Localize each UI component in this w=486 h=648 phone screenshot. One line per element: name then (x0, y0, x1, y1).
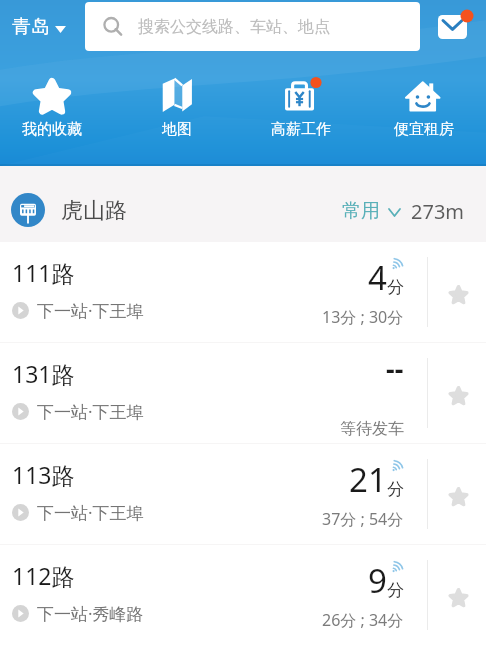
staticText: 下一站·下王埠 (37, 400, 144, 423)
staticText: 下一站·下王埠 (37, 501, 144, 524)
staticText: 分 (387, 479, 404, 500)
staticText: 等待发车 (340, 419, 404, 439)
staticText: 分 (387, 580, 404, 601)
staticText: 26分 ; 34分 (322, 609, 404, 631)
staticText: 下一站·秀峰路 (37, 602, 144, 625)
button[interactable]: 112路 (0, 545, 486, 645)
button[interactable]: 搜索公交线路、车站、地点 (85, 2, 420, 51)
staticText: 273m (411, 198, 465, 225)
button[interactable]: Favorite (428, 545, 486, 645)
button[interactable]: 131路 (0, 343, 486, 443)
button[interactable]: Favorite (428, 242, 486, 342)
button[interactable]: 113路 (0, 444, 486, 544)
staticText: -- (386, 350, 404, 387)
button[interactable]: 高薪工作 (261, 76, 341, 139)
button[interactable]: Favorite (428, 444, 486, 544)
staticText: 9 (368, 558, 387, 603)
staticText: 常用 (342, 199, 380, 223)
staticText: 下一站·下王埠 (37, 299, 144, 322)
button[interactable]: 常用 (342, 198, 400, 222)
button[interactable]: 便宜租房 (384, 76, 464, 139)
button[interactable]: Favorite (428, 343, 486, 443)
staticText: 高薪工作 (271, 120, 331, 139)
staticText: 131路 (12, 358, 75, 389)
staticText: 虎山路 (61, 197, 127, 225)
staticText: 我的收藏 (22, 120, 82, 139)
button[interactable]: 111路 (0, 242, 486, 342)
staticText: 分 (387, 277, 404, 298)
button[interactable]: 我的收藏 (12, 76, 92, 139)
staticText: 便宜租房 (394, 120, 454, 139)
staticText: 37分 ; 54分 (322, 508, 404, 530)
staticText: 13分 ; 30分 (322, 306, 404, 328)
staticText: 21 (349, 457, 387, 502)
button[interactable]: Messages (432, 5, 476, 49)
staticText: 4 (368, 255, 387, 300)
staticText: 地图 (162, 120, 192, 139)
staticText: 青岛 (12, 15, 50, 39)
staticText: 搜索公交线路、车站、地点 (138, 17, 330, 37)
staticText: 113路 (12, 459, 75, 490)
staticText: 111路 (12, 257, 75, 288)
button[interactable]: 青岛 (12, 0, 66, 54)
staticText: 112路 (12, 560, 75, 591)
button[interactable]: 地图 (137, 76, 217, 139)
